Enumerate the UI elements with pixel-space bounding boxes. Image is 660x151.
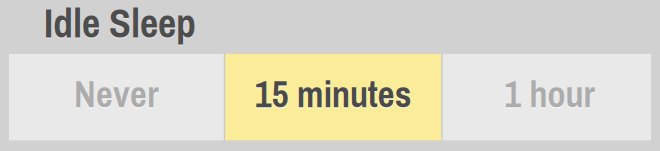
staticText: 1 hour: [504, 70, 595, 120]
button[interactable]: Never: [9, 54, 224, 140]
button[interactable]: 1 hour: [443, 54, 651, 140]
staticText: Idle Sleep: [44, 0, 196, 51]
staticText: 15 minutes: [255, 70, 412, 120]
button[interactable]: 15 minutes: [225, 54, 441, 140]
staticText: Never: [74, 70, 159, 120]
staticText: Idle Sleep: [44, 0, 196, 50]
staticText: 15 minutes: [255, 69, 412, 119]
staticText: 1 hour: [504, 69, 595, 119]
staticText: Never: [74, 69, 159, 119]
